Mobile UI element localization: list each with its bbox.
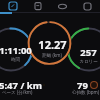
staticText: 1:11:00 xyxy=(0,44,32,57)
button[interactable]: Distance xyxy=(22,37,82,58)
staticText: 257 xyxy=(80,46,97,59)
staticText: 79 xyxy=(77,79,88,90)
staticText: ペース (分/km) xyxy=(2,89,33,95)
button[interactable]: Exercise xyxy=(0,0,25,12)
button[interactable]: Settings xyxy=(75,0,100,12)
button[interactable]: Calories xyxy=(58,46,100,65)
button[interactable]: 79 xyxy=(77,79,100,90)
staticText: カロリー xyxy=(79,59,98,65)
staticText: 5:47 / km xyxy=(0,79,43,90)
staticText: 12.27 xyxy=(38,37,67,52)
staticText: 距離 (km) xyxy=(42,52,62,58)
button[interactable]: 5:47 / km xyxy=(0,79,43,90)
button[interactable]: Headphones xyxy=(50,0,75,12)
staticText: 時間 xyxy=(11,57,20,63)
button[interactable]: Water xyxy=(25,0,50,12)
button[interactable]: Time xyxy=(0,44,45,63)
staticText: 心拍数 (bpm) xyxy=(72,89,100,95)
